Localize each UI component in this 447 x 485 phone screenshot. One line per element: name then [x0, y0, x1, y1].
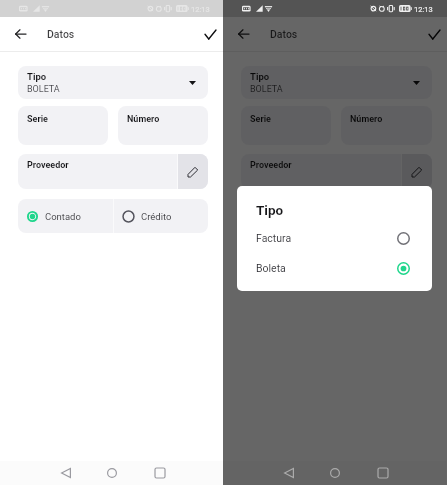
staticText: Contado	[268, 211, 304, 222]
staticText: Contado	[45, 211, 81, 222]
button[interactable]: Home	[319, 461, 351, 485]
button[interactable]: Recents	[144, 461, 176, 485]
button[interactable]: Recents	[367, 461, 399, 485]
button[interactable]: Back	[273, 461, 305, 485]
staticText: Proveedor	[250, 160, 292, 171]
staticText: Datos	[47, 28, 75, 40]
staticText: Tipo	[27, 71, 47, 82]
button[interactable]: Edit provider	[178, 154, 208, 189]
staticText: Serie	[250, 114, 271, 125]
staticText: Proveedor	[27, 160, 69, 171]
staticText: 12:13	[414, 5, 433, 14]
staticText: Boleta	[256, 262, 286, 274]
button[interactable]: Número	[341, 106, 432, 145]
button[interactable]: Back	[50, 461, 82, 485]
button[interactable]: Serie	[241, 106, 331, 145]
staticText: Factura	[256, 232, 292, 244]
button[interactable]: Back	[8, 22, 32, 46]
button[interactable]: Home	[96, 461, 128, 485]
staticText: Tipo	[250, 71, 270, 82]
button[interactable]: Back	[231, 22, 255, 46]
button[interactable]: Serie	[18, 106, 108, 145]
button[interactable]: Tipo	[18, 66, 208, 99]
staticText: Número	[350, 114, 383, 125]
staticText: Crédito	[141, 211, 172, 222]
button[interactable]: Recents	[367, 461, 399, 485]
button[interactable]: Número	[118, 106, 208, 145]
staticText: BOLETA	[250, 84, 283, 95]
button[interactable]: Tipo	[241, 66, 432, 99]
button[interactable]: Contado	[241, 199, 336, 233]
button[interactable]: Boleta	[237, 257, 432, 279]
button[interactable]: Crédito	[114, 199, 208, 233]
button[interactable]: Edit provider	[402, 154, 432, 189]
staticText: Número	[127, 114, 160, 125]
staticText: Tipo	[256, 202, 284, 218]
button[interactable]: Save	[422, 22, 446, 46]
staticText: Datos	[270, 28, 298, 40]
button[interactable]: Contado	[18, 199, 113, 233]
button[interactable]: Factura	[237, 227, 432, 249]
button[interactable]: Back	[273, 461, 305, 485]
button[interactable]: Save	[198, 22, 222, 46]
staticText: Serie	[27, 114, 48, 125]
staticText: BOLETA	[27, 84, 60, 95]
staticText: 12:13	[414, 5, 433, 14]
staticText: 12:13	[191, 5, 210, 14]
button[interactable]: Crédito	[337, 199, 432, 233]
button[interactable]: Home	[319, 461, 351, 485]
